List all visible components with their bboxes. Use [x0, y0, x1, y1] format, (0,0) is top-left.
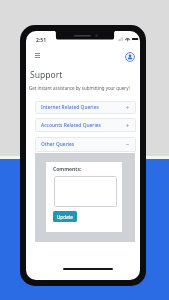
staticText: 2:51: [36, 37, 46, 44]
button[interactable]: Internet Related Queries: [35, 101, 136, 114]
staticText: Comments:: [53, 166, 82, 173]
staticText: Support: [30, 69, 63, 81]
button[interactable]: Other Queries: [35, 137, 136, 152]
button[interactable]: Account: [125, 52, 135, 62]
button[interactable]: Menu: [30, 48, 44, 62]
staticText: Update: [57, 214, 73, 220]
button[interactable]: Update: [53, 211, 77, 222]
staticText: Internet Related Queries: [41, 104, 99, 111]
staticText: Accounts Related Queries: [41, 122, 101, 129]
staticText: Other Queries: [41, 141, 75, 148]
staticText: Get instant assistance by submitting you…: [29, 85, 130, 91]
button[interactable]: Accounts Related Queries: [35, 118, 136, 132]
